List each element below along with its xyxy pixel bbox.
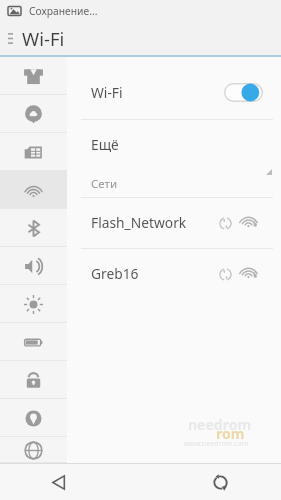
staticText: Wi-Fi bbox=[91, 83, 123, 102]
button[interactable]: Greb16 bbox=[67, 249, 281, 299]
staticText: www.needrom.com bbox=[184, 439, 249, 449]
button[interactable]: battery bbox=[0, 323, 67, 361]
button[interactable]: wifi bbox=[0, 171, 67, 209]
button[interactable]: Ещё bbox=[67, 120, 281, 179]
button[interactable]: Wi-Fi bbox=[67, 65, 281, 119]
button[interactable]: sound bbox=[0, 247, 67, 285]
button[interactable]: shirt bbox=[0, 57, 67, 95]
staticText: Flash_Network bbox=[91, 213, 187, 232]
staticText: Ещё bbox=[91, 135, 119, 154]
staticText: Greb16 bbox=[91, 264, 139, 283]
staticText: rom bbox=[216, 424, 245, 443]
staticText: needrom bbox=[188, 415, 252, 434]
button[interactable]: sim bbox=[0, 133, 67, 171]
button[interactable]: lock bbox=[0, 361, 67, 399]
button[interactable]: brightness bbox=[0, 285, 67, 323]
button[interactable]: globe bbox=[0, 437, 67, 463]
button[interactable]: Back bbox=[35, 464, 82, 500]
staticText: Сети bbox=[91, 176, 118, 192]
staticText: Wi-Fi bbox=[22, 26, 65, 51]
button[interactable]: Menu bbox=[0, 22, 20, 55]
button[interactable]: Wi-Fi toggle bbox=[224, 83, 263, 102]
button[interactable]: cloud bbox=[0, 95, 67, 133]
button[interactable]: Refresh bbox=[197, 464, 244, 500]
button[interactable]: location bbox=[0, 399, 67, 437]
staticText: Сохранение... bbox=[29, 4, 98, 18]
button[interactable]: bluetooth bbox=[0, 209, 67, 247]
button[interactable]: Flash_Network bbox=[67, 198, 281, 248]
